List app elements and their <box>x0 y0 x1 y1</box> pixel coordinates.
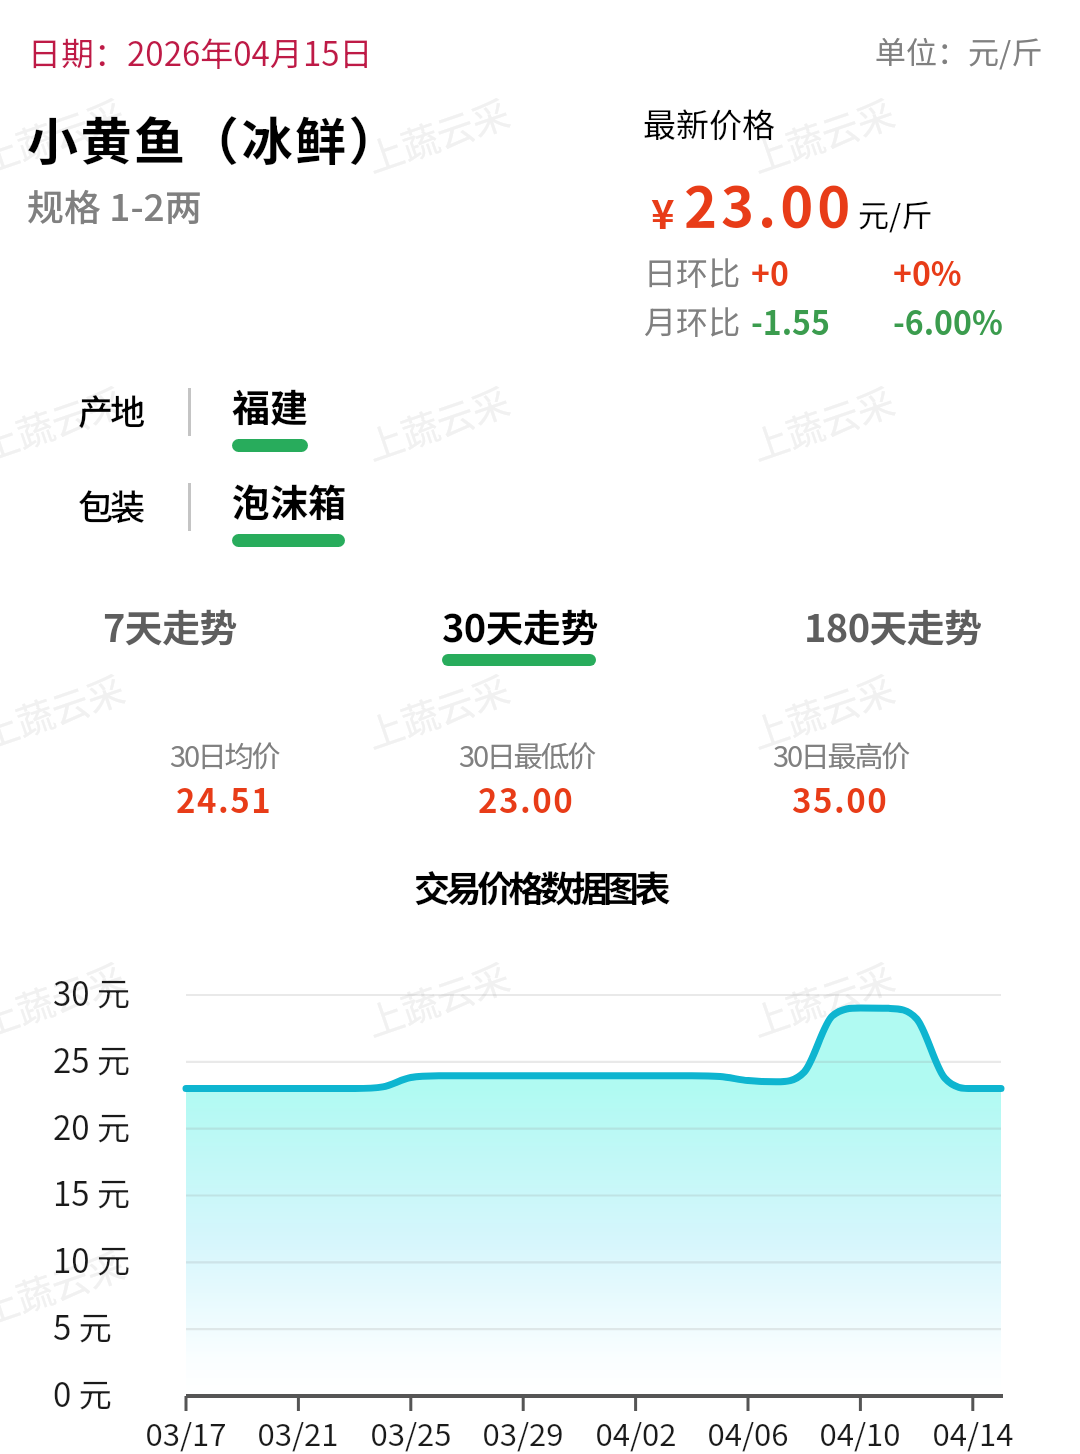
staticText: ¥ <box>651 183 675 241</box>
staticText: 上蔬云采 <box>743 1236 901 1336</box>
staticText: 产地 <box>78 384 143 435</box>
button[interactable]: 福建 <box>232 378 309 452</box>
staticText: 0 元 <box>53 1369 112 1417</box>
staticText: 月环比 <box>644 297 741 343</box>
staticText: -6.00% <box>893 298 1003 344</box>
staticText: 03/25 <box>341 1410 481 1454</box>
staticText: 上蔬云采 <box>358 1236 516 1336</box>
staticText: 泡沫箱 <box>232 473 347 528</box>
button[interactable]: 泡沫箱 <box>232 473 347 547</box>
staticText: 30日最低价 <box>459 733 594 775</box>
staticText: 23.00 <box>684 162 855 243</box>
staticText: 交易价格数据图表 <box>0 860 1080 912</box>
staticText: 元/斤 <box>858 191 933 236</box>
staticText: 30 元 <box>53 968 131 1016</box>
button[interactable]: 7天走势 <box>103 598 249 670</box>
staticText: 单位：元/斤 <box>875 28 1043 73</box>
staticText: 03/21 <box>228 1410 368 1454</box>
staticText: 10 元 <box>53 1235 131 1283</box>
staticText: 上蔬云采 <box>358 372 516 472</box>
staticText: 上蔬云采 <box>743 372 901 472</box>
staticText: 上蔬云采 <box>743 660 901 760</box>
staticText: +0% <box>893 249 962 295</box>
staticText: 福建 <box>232 378 309 433</box>
staticText: 日环比 <box>644 248 741 294</box>
staticText: 最新价格 <box>643 99 775 147</box>
staticText: 包装 <box>78 479 143 530</box>
staticText: 上蔬云采 <box>358 84 516 184</box>
staticText: 上蔬云采 <box>0 84 131 184</box>
staticText: 上蔬云采 <box>0 372 131 472</box>
staticText: 上蔬云采 <box>743 84 901 184</box>
staticText: 小黄鱼（冰鲜） <box>27 101 403 175</box>
staticText: 25 元 <box>53 1035 131 1083</box>
staticText: 上蔬云采 <box>0 660 131 760</box>
button[interactable]: 30天走势 <box>442 598 610 670</box>
staticText: 上蔬云采 <box>0 1236 131 1336</box>
staticText: 04/14 <box>903 1410 1043 1454</box>
staticText: 15 元 <box>53 1168 131 1216</box>
staticText: 180天走势 <box>804 598 982 653</box>
staticText: 上蔬云采 <box>358 660 516 760</box>
staticText: +0 <box>751 249 789 295</box>
staticText: 规格 1-2两 <box>27 178 202 232</box>
staticText: 30天走势 <box>442 598 598 653</box>
staticText: 日期：2026年04月15日 <box>28 28 373 76</box>
staticText: 04/06 <box>678 1410 818 1454</box>
staticText: 上蔬云采 <box>358 948 516 1048</box>
staticText: 上蔬云采 <box>743 948 901 1048</box>
staticText: -1.55 <box>751 298 830 344</box>
staticText: 7天走势 <box>103 598 238 653</box>
staticText: 03/29 <box>453 1410 593 1454</box>
button[interactable]: 180天走势 <box>804 598 992 670</box>
staticText: 35.00 <box>792 775 889 823</box>
staticText: 04/10 <box>790 1410 930 1454</box>
staticText: 30日均价 <box>170 733 279 775</box>
staticText: 04/02 <box>566 1410 706 1454</box>
staticText: 23.00 <box>478 775 575 823</box>
other: 交易价格数据图表 折线图 <box>0 0 1080 1454</box>
staticText: 20 元 <box>53 1102 131 1150</box>
staticText: 24.51 <box>176 775 273 823</box>
staticText: 30日最高价 <box>773 733 908 775</box>
staticText: 5 元 <box>53 1302 112 1350</box>
staticText: 上蔬云采 <box>0 948 131 1048</box>
staticText: 03/17 <box>116 1410 256 1454</box>
